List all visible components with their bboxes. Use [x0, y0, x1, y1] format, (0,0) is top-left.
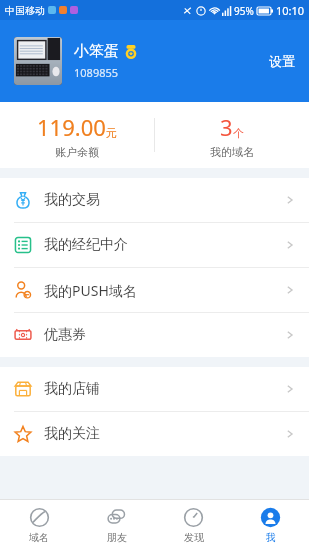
staticText: 119.00 — [37, 112, 106, 142]
button[interactable]: 我 — [232, 500, 309, 550]
staticText: 1089855 — [74, 65, 119, 80]
button[interactable]: 朋友 — [78, 500, 155, 550]
button[interactable]: 设置 — [255, 45, 309, 77]
staticText: 我的PUSH域名 — [44, 281, 137, 300]
staticText: 3 — [220, 112, 233, 142]
staticText: 95% — [234, 4, 254, 18]
staticText: 发现 — [184, 531, 204, 544]
button[interactable]: 119.00 — [0, 102, 154, 168]
staticText: 账户余额 — [55, 145, 99, 159]
staticText: 我的关注 — [44, 425, 100, 443]
staticText: 域名 — [29, 531, 49, 544]
staticText: 优惠券 — [44, 326, 86, 344]
button[interactable]: 3 — [155, 102, 309, 168]
staticText: 个 — [233, 126, 244, 140]
button[interactable]: 我的交易 — [0, 178, 309, 222]
button[interactable] — [14, 37, 62, 85]
button[interactable]: 我的PUSH域名 — [0, 268, 309, 312]
staticText: 中国移动 — [5, 4, 45, 17]
staticText: 10:10 — [276, 3, 305, 18]
button[interactable]: 我的店铺 — [0, 367, 309, 411]
button[interactable]: 发现 — [155, 500, 232, 550]
staticText: 朋友 — [107, 531, 127, 544]
staticText: 设置 — [269, 53, 295, 69]
button[interactable]: 我的关注 — [0, 412, 309, 456]
staticText: 元 — [106, 126, 117, 140]
staticText: 我的域名 — [210, 145, 254, 159]
staticText: 我的店铺 — [44, 380, 100, 398]
button[interactable]: 域名 — [0, 500, 78, 550]
staticText: 小笨蛋 — [74, 42, 119, 61]
staticText: 我 — [266, 531, 276, 544]
staticText: 我的经纪中介 — [44, 236, 128, 254]
button[interactable]: 我的经纪中介 — [0, 223, 309, 267]
button[interactable]: 优惠券 — [0, 313, 309, 357]
staticText: 我的交易 — [44, 191, 100, 209]
